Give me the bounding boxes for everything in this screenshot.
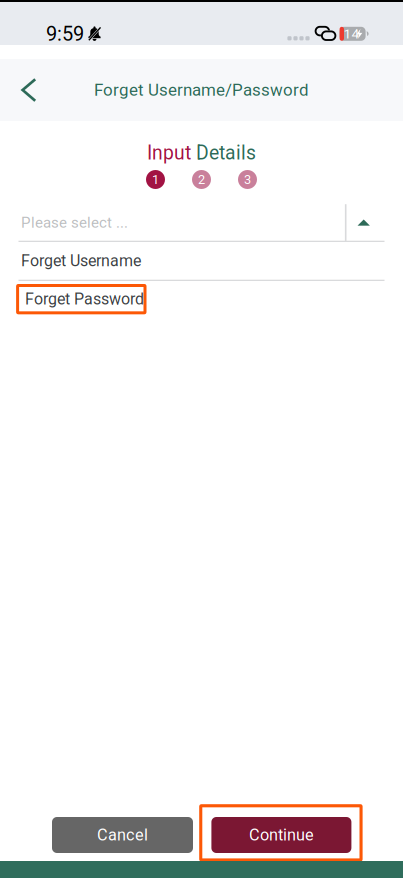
staticText: 1 (152, 172, 159, 187)
staticText: Cancel (97, 825, 148, 845)
staticText: 9:59 (46, 22, 84, 45)
staticText: 2 (198, 172, 205, 187)
staticText: Forget Username (21, 251, 141, 270)
staticText: 3 (244, 172, 251, 187)
staticText: Continue (249, 825, 314, 845)
button[interactable]: Back (7, 68, 51, 112)
staticText: 14 (344, 26, 360, 42)
staticText: Forget Password (25, 290, 144, 309)
staticText: Input (147, 142, 191, 164)
button[interactable]: Continue (211, 817, 351, 853)
staticText: Forget Username/Password (94, 80, 309, 100)
staticText: Please select ... (21, 214, 128, 232)
button[interactable]: Cancel (52, 817, 193, 853)
button[interactable]: Forget Username (18, 242, 384, 281)
staticText: Details (191, 142, 256, 164)
button[interactable]: Please select ... (18, 205, 384, 242)
button[interactable]: Forget Password (16, 284, 146, 314)
